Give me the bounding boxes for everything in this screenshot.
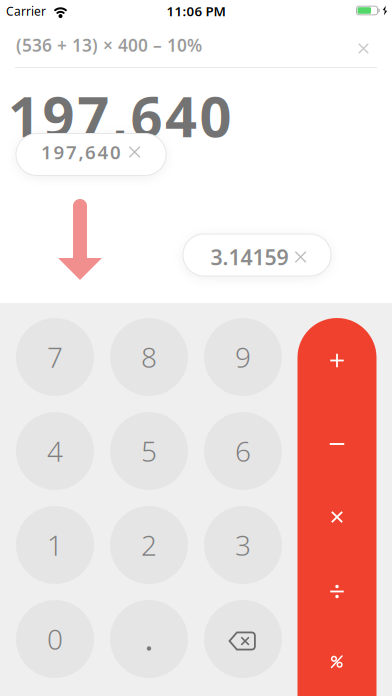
button[interactable]: 5 [110,412,188,490]
staticText: 197,640 [41,140,121,164]
button[interactable]: Remove value [183,234,331,276]
button[interactable]: Percent [297,626,376,696]
staticText: 6 [235,432,251,470]
staticText: 5 [141,432,157,470]
button[interactable]: 7 [16,318,94,396]
button[interactable]: 0 [16,600,94,678]
staticText: 4 [47,432,63,470]
button[interactable]: 9 [204,318,282,396]
button[interactable]: 1 [16,506,94,584]
button[interactable]: Multiply [297,482,376,552]
button[interactable]: 8 [110,318,188,396]
staticText: 11:06 PM [166,2,225,20]
button[interactable]: Divide [297,556,376,626]
button[interactable]: Remove value [16,133,166,175]
button[interactable]: Decimal point [110,600,188,678]
button[interactable]: 4 [16,412,94,490]
staticText: 2 [141,526,157,564]
staticText: 9 [235,338,251,376]
staticText: 1 [47,526,63,564]
staticText: 197,640 [8,78,232,153]
button[interactable]: Clear expression [348,33,378,63]
staticText: 7 [47,338,63,376]
button[interactable]: Add [297,325,376,395]
staticText: 0 [47,620,63,658]
staticText: (536 + 13) × 400 – 10% [16,33,202,56]
staticText: 3 [235,526,251,564]
staticText: 3.14159 [210,243,288,271]
button[interactable]: Subtract [297,409,376,479]
staticText: Carrier [6,3,46,19]
button[interactable]: 2 [110,506,188,584]
button[interactable]: 3 [204,506,282,584]
button[interactable]: 6 [204,412,282,490]
button[interactable]: Delete [204,600,282,678]
staticText: 8 [141,338,157,376]
